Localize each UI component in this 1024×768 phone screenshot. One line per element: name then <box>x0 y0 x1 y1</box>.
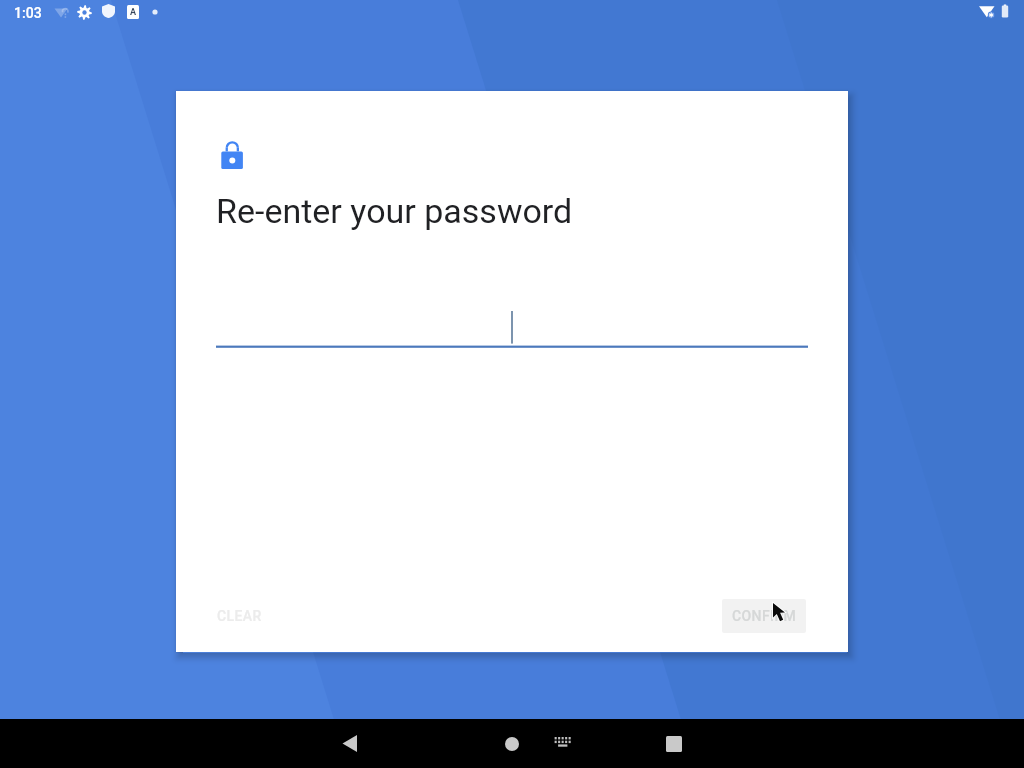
staticText: A <box>130 7 137 18</box>
button[interactable]: Switch keyboard <box>539 719 587 768</box>
staticText: CLEAR <box>217 608 262 624</box>
button[interactable]: Home <box>472 719 552 768</box>
staticText: 1:03 <box>14 5 42 21</box>
button[interactable]: Back <box>309 719 389 768</box>
button[interactable]: CONFIRM <box>722 599 806 633</box>
staticText: Re-enter your password <box>216 191 573 231</box>
button[interactable]: CLEAR <box>204 599 274 633</box>
staticText: CONFIRM <box>732 608 797 624</box>
button[interactable]: Recent apps <box>634 719 714 768</box>
button[interactable]: Password field <box>216 291 808 351</box>
